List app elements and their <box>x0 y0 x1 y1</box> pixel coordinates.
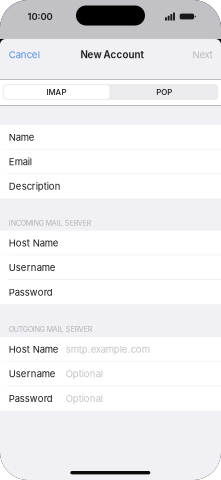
staticText: INCOMING MAIL SERVER <box>9 219 92 227</box>
button[interactable]: Username <box>0 362 221 386</box>
staticText: Cancel <box>9 49 40 60</box>
button[interactable]: POP <box>110 84 218 100</box>
button[interactable]: Next <box>193 49 213 60</box>
staticText: Password <box>9 393 53 404</box>
staticText: Next <box>193 49 213 60</box>
staticText: Optional <box>66 368 103 380</box>
staticText: OUTGOING MAIL SERVER <box>9 325 93 334</box>
staticText: Optional <box>66 393 103 404</box>
button[interactable]: Password <box>0 386 221 411</box>
staticText: POP <box>156 87 172 97</box>
staticText: Username <box>9 262 56 273</box>
button[interactable]: IMAP <box>3 84 110 100</box>
staticText: Host Name <box>9 237 59 249</box>
staticText: Description <box>9 181 61 192</box>
staticText: Name <box>9 131 35 143</box>
button[interactable]: Cancel <box>9 49 40 60</box>
button[interactable]: Username <box>0 255 221 280</box>
button[interactable]: Description <box>0 174 221 199</box>
staticText: Password <box>9 286 53 298</box>
staticText: smtp.example.com <box>66 344 150 355</box>
staticText: Username <box>9 368 56 380</box>
staticText: 10:00 <box>27 11 52 22</box>
staticText: IMAP <box>47 87 67 97</box>
button[interactable]: Host Name <box>0 337 221 362</box>
button[interactable]: Host Name <box>0 231 221 255</box>
staticText: Email <box>9 156 32 168</box>
staticText: Host Name <box>9 344 59 355</box>
button[interactable]: Email <box>0 149 221 174</box>
button[interactable]: Name <box>0 125 221 149</box>
staticText: New Account <box>80 49 143 61</box>
button[interactable]: Password <box>0 280 221 304</box>
